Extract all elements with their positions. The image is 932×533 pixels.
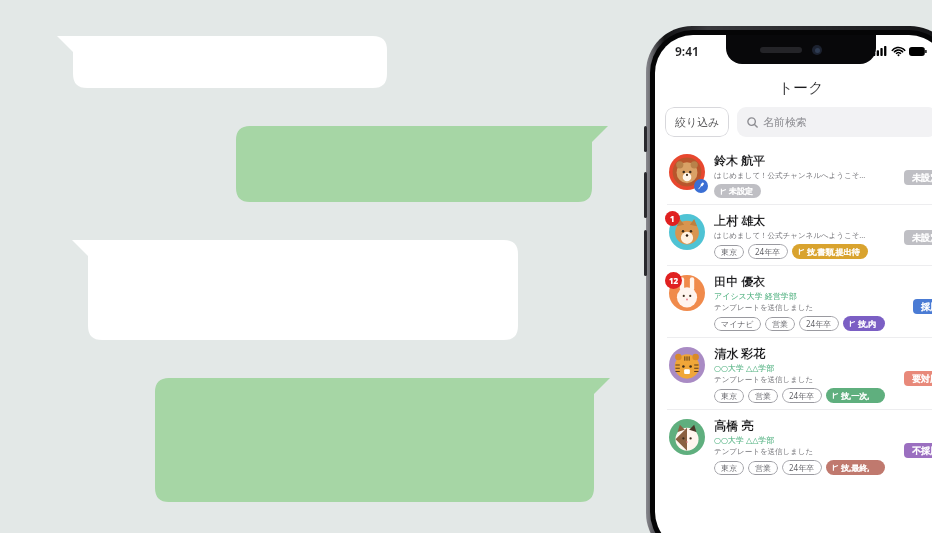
staticText: 9:41 bbox=[675, 43, 699, 59]
staticText: 清水 彩花 bbox=[714, 345, 766, 361]
staticText: テンプレートを送信しました bbox=[714, 303, 814, 312]
button[interactable]: 12 bbox=[655, 266, 932, 337]
staticText: アイシス大学 経営学部 bbox=[714, 290, 797, 301]
staticText: はじめまして！公式チャンネルへようこそ... bbox=[714, 230, 866, 240]
staticText: 田中 優衣 bbox=[714, 273, 766, 289]
staticText: テンプレートを送信しました bbox=[714, 447, 814, 456]
staticText: 24年卒 bbox=[789, 462, 815, 473]
staticText: 東京 bbox=[721, 463, 737, 473]
staticText: 24年卒 bbox=[755, 246, 781, 257]
staticText: 採用 bbox=[921, 301, 932, 312]
staticText: 絞り込み bbox=[675, 115, 720, 129]
staticText: ○○大学 △△学部 bbox=[714, 362, 775, 373]
button[interactable]: 名前検索 bbox=[737, 107, 932, 137]
staticText: マイナビ bbox=[721, 319, 754, 329]
staticText: 12 bbox=[669, 275, 679, 286]
staticText: テンプレートを送信しました bbox=[714, 375, 814, 384]
staticText: ○○大学 △△学部 bbox=[714, 434, 775, 445]
staticText: 要対応 bbox=[912, 373, 932, 384]
staticText: 技,書類,提出待 bbox=[807, 246, 860, 257]
staticText: 不採用 bbox=[912, 445, 932, 456]
staticText: 24年卒 bbox=[806, 318, 832, 329]
staticText: 名前検索 bbox=[763, 115, 807, 129]
button[interactable]: 絞り込み bbox=[665, 107, 729, 137]
staticText: 未設定 bbox=[912, 172, 932, 183]
staticText: 未設定 bbox=[912, 232, 932, 243]
staticText: 高橋 亮 bbox=[714, 417, 754, 433]
staticText: 鈴木 航平 bbox=[714, 152, 766, 168]
staticText: 東京 bbox=[721, 247, 737, 257]
staticText: 1 bbox=[670, 213, 675, 224]
staticText: はじめまして！公式チャンネルへようこそ... bbox=[714, 170, 866, 180]
staticText: 東京 bbox=[721, 391, 737, 401]
button[interactable]: 鈴木 航平 bbox=[655, 145, 932, 204]
staticText: 上村 雄太 bbox=[714, 212, 766, 228]
staticText: 24年卒 bbox=[789, 390, 815, 401]
staticText: トーク bbox=[778, 79, 824, 98]
button[interactable]: 清水 彩花 bbox=[655, 338, 932, 409]
button[interactable]: 高橋 亮 bbox=[655, 410, 932, 481]
staticText: 営業 bbox=[755, 391, 771, 401]
staticText: 技,一次,日調待 bbox=[841, 390, 877, 401]
staticText: 営業 bbox=[772, 319, 788, 329]
button[interactable]: 1 bbox=[655, 205, 932, 265]
staticText: 技,内定,通知後待 bbox=[858, 318, 877, 329]
staticText: 営業 bbox=[755, 463, 771, 473]
staticText: 未設定 bbox=[729, 186, 753, 196]
staticText: 技,最終,選考落 bbox=[841, 462, 877, 473]
